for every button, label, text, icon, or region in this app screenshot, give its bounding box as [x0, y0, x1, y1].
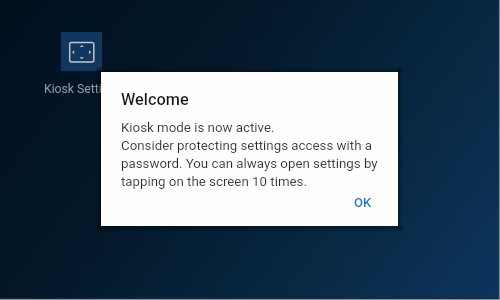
- button[interactable]: OK: [336, 183, 390, 222]
- staticText: OK: [354, 195, 372, 210]
- staticText: Kiosk Settings: [44, 82, 122, 96]
- staticText: Kiosk mode is now active. Consider prote…: [121, 120, 378, 189]
- staticText: Welcome: [121, 90, 189, 109]
- button[interactable]: Kiosk Settings: [61, 32, 102, 71]
